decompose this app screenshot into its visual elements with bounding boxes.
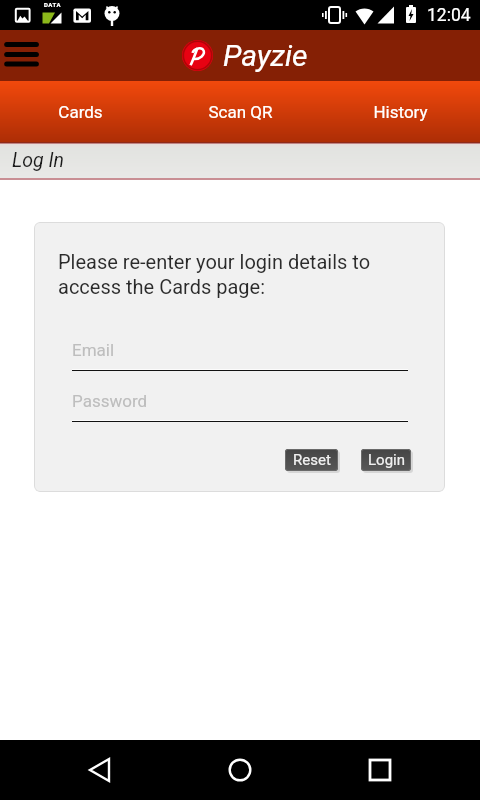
- staticText: Scan QR: [208, 102, 273, 122]
- staticText: DATA: [44, 1, 61, 8]
- button[interactable]: Scan QR: [160, 81, 320, 142]
- staticText: Log In: [12, 149, 64, 172]
- staticText: 12:04: [427, 5, 471, 26]
- staticText: Login: [368, 451, 405, 469]
- button[interactable]: Recent apps: [350, 740, 410, 800]
- staticText: Password: [72, 391, 148, 411]
- button[interactable]: Home: [210, 740, 270, 800]
- staticText: Please re-enter your login details to ac…: [58, 250, 371, 299]
- staticText: Payzie: [223, 38, 308, 73]
- staticText: Reset: [293, 451, 331, 469]
- staticText: Cards: [58, 102, 103, 122]
- button[interactable]: Reset: [285, 449, 338, 471]
- staticText: Email: [72, 340, 115, 360]
- staticText: History: [373, 102, 428, 122]
- button[interactable]: Back: [70, 740, 130, 800]
- button[interactable]: Cards: [0, 81, 160, 142]
- button[interactable]: Menu: [0, 33, 46, 79]
- button[interactable]: History: [320, 81, 480, 142]
- button[interactable]: Login: [361, 449, 411, 471]
